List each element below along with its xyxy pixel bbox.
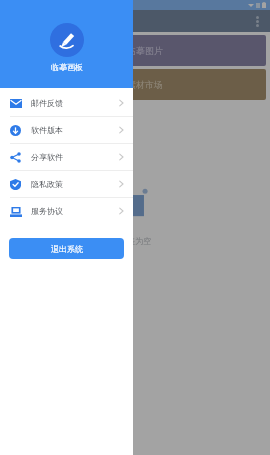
staticText: 退出系统 xyxy=(51,244,83,254)
staticText: 分享软件 xyxy=(31,152,63,162)
button[interactable]: More options xyxy=(249,13,265,29)
button[interactable]: 隐私政策 xyxy=(0,171,133,197)
button[interactable]: 软件版本 xyxy=(0,117,133,143)
staticText: 服务协议 xyxy=(31,206,63,216)
staticText: 隐私政策 xyxy=(31,179,63,189)
button[interactable]: 分享软件 xyxy=(0,144,133,170)
staticText: 软件版本 xyxy=(31,125,63,135)
button[interactable]: 服务协议 xyxy=(0,198,133,224)
staticText: 临摹画板 xyxy=(51,62,83,72)
staticText: 素材市场 xyxy=(127,79,163,90)
button[interactable]: 素材市场 xyxy=(4,69,266,100)
staticText: 列表为空 xyxy=(119,236,151,246)
button[interactable]: 退出系统 xyxy=(9,238,124,259)
staticText: 临摹图片 xyxy=(127,45,163,56)
button[interactable]: 邮件反馈 xyxy=(0,90,133,116)
staticText: 邮件反馈 xyxy=(31,98,63,108)
button[interactable]: 临摹图片 xyxy=(4,35,266,66)
